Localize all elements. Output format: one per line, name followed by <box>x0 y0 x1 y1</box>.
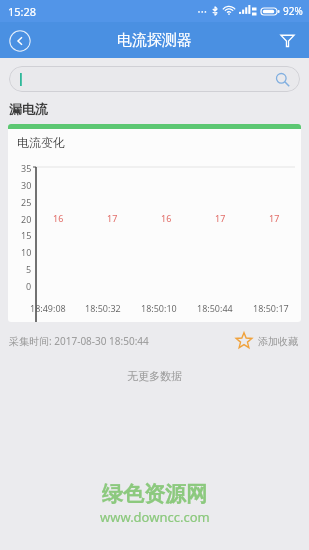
other: Search <box>275 72 290 87</box>
staticText: 0 <box>26 280 32 292</box>
button[interactable]: Back <box>8 29 31 52</box>
staticText: 电流变化 <box>17 135 65 150</box>
staticText: 92% <box>283 4 303 18</box>
staticText: 18:50:44 <box>197 302 233 314</box>
button[interactable]: 添加收藏 <box>233 329 300 353</box>
button[interactable]: Filter <box>275 28 299 52</box>
staticText: 绿色资源网 <box>102 481 207 507</box>
staticText: 35 <box>21 162 32 174</box>
staticText: 采集时间: 2017-08-30 18:50:44 <box>9 334 149 348</box>
staticText: 电流探测器 <box>117 31 192 50</box>
staticText: 20 <box>21 213 32 225</box>
staticText: 18:50:10 <box>141 302 177 314</box>
staticText: 25 <box>21 196 32 208</box>
button[interactable]: 电流变化 <box>8 124 301 322</box>
staticText: 18:49:08 <box>30 302 66 314</box>
staticText: 18:50:17 <box>253 302 289 314</box>
staticText: 30 <box>21 179 32 191</box>
staticText: 15:28 <box>8 4 37 19</box>
staticText: 17 <box>107 212 118 224</box>
button[interactable]: Search <box>9 66 300 92</box>
staticText: 无更多数据 <box>0 369 309 383</box>
staticText: 15 <box>21 229 32 241</box>
staticText: 漏电流 <box>9 101 48 117</box>
staticText: 5 <box>26 263 32 275</box>
staticText: 16 <box>53 212 64 224</box>
staticText: 16 <box>161 212 172 224</box>
staticText: 17 <box>215 212 226 224</box>
staticText: 10 <box>21 246 32 258</box>
staticText: 17 <box>269 212 280 224</box>
staticText: 添加收藏 <box>258 335 298 348</box>
staticText: www.downcc.com <box>100 508 210 526</box>
staticText: 18:50:32 <box>85 302 121 314</box>
